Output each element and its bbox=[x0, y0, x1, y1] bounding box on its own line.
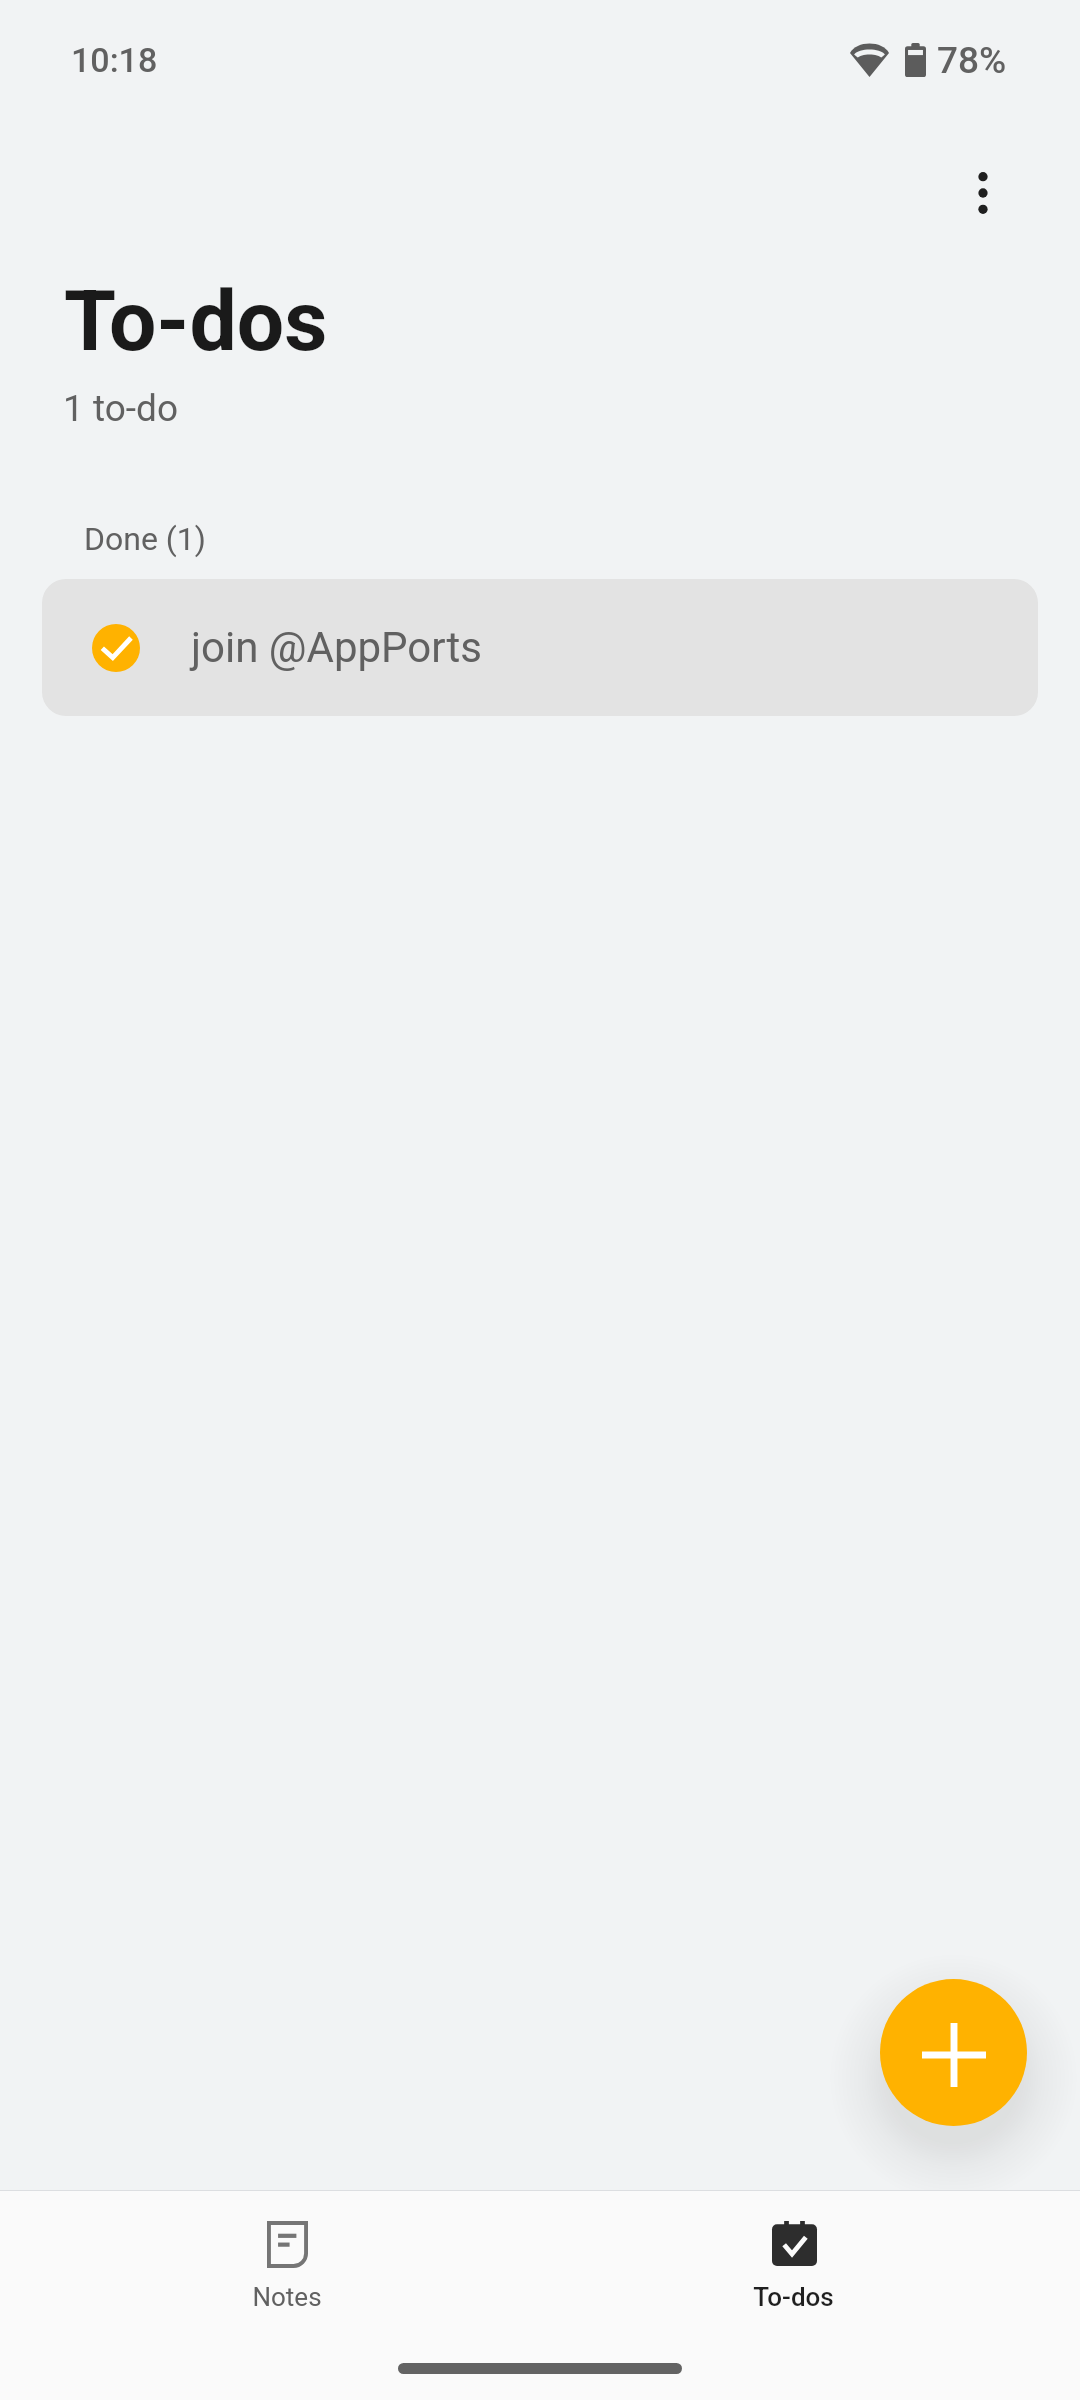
button[interactable]: More options bbox=[935, 145, 1031, 241]
staticText: Done (1) bbox=[84, 520, 206, 558]
staticText: 78% bbox=[937, 39, 1007, 82]
button[interactable]: To-dos bbox=[540, 2191, 1046, 2341]
staticText: To-dos bbox=[64, 272, 328, 370]
button[interactable]: Notes bbox=[34, 2191, 540, 2341]
staticText: To-dos bbox=[753, 2282, 834, 2312]
staticText: 10:18 bbox=[71, 40, 158, 80]
button[interactable]: join @AppPorts bbox=[42, 579, 1038, 716]
button[interactable]: Add to-do bbox=[880, 1979, 1027, 2126]
staticText: 1 to-do bbox=[63, 387, 179, 430]
staticText: join @AppPorts bbox=[191, 623, 482, 672]
staticText: Notes bbox=[252, 2282, 322, 2312]
